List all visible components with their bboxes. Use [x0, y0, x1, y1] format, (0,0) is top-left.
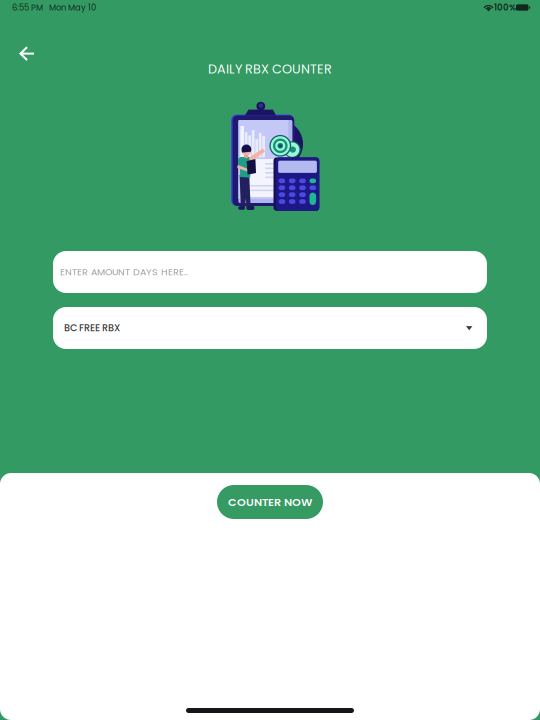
staticText: BC FREE RBX: [64, 321, 120, 335]
staticText: Mon May 10: [43, 2, 96, 13]
button[interactable]: COUNTER NOW: [217, 485, 323, 519]
button[interactable]: Back: [4, 31, 50, 77]
staticText: DAILY RBX COUNTER: [208, 60, 332, 78]
staticText: COUNTER NOW: [228, 494, 312, 510]
staticText: 100%: [494, 1, 516, 13]
staticText: ENTER AMOUNT DAYS HERE..: [60, 265, 188, 279]
button[interactable]: BC FREE RBX: [53, 307, 487, 349]
staticText: 6:55 PM: [12, 2, 43, 13]
button[interactable]: ENTER AMOUNT DAYS HERE..: [53, 251, 487, 293]
